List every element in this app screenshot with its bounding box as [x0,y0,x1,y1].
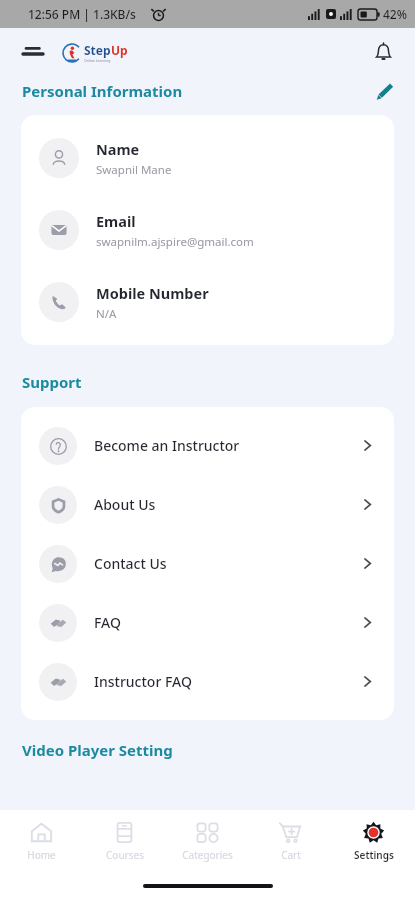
button[interactable]: Settings [332,810,415,872]
button[interactable]: About Us [21,475,394,534]
staticText: FAQ [94,613,361,632]
staticText: Instructor FAQ [94,672,361,691]
button[interactable]: Notifications [365,34,401,70]
staticText: About Us [94,495,361,514]
staticText: swapnilm.ajspire@gmail.com [96,234,254,250]
button[interactable]: Categories [166,810,249,872]
button[interactable]: Cart [249,810,332,872]
staticText: Video Player Setting [22,740,173,760]
staticText: Email [96,211,136,231]
button[interactable]: Mobile Number [21,266,394,338]
staticText: Mobile Number [96,283,209,303]
staticText: Name [96,139,140,159]
button[interactable]: Contact Us [21,534,394,593]
button[interactable]: Instructor FAQ [21,652,394,711]
staticText: Up [111,42,128,58]
staticText: Home [27,848,56,862]
staticText: Contact Us [94,554,361,573]
staticText: Swapnil Mane [96,162,172,178]
staticText: 42% [383,6,407,22]
button[interactable]: Courses [83,810,166,872]
button[interactable]: Name [21,122,394,194]
button[interactable]: Home [0,810,83,872]
staticText: Online Learning [84,58,111,63]
staticText: Courses [106,848,144,862]
staticText: 12:56 PM | 1.3KB/s [28,6,136,22]
staticText: Cart [281,848,301,862]
button[interactable]: FAQ [21,593,394,652]
staticText: Become an Instructor [94,436,361,455]
staticText: Settings [354,848,394,862]
button[interactable]: Menu [16,35,50,69]
staticText: Categories [182,848,233,862]
staticText: Support [22,372,82,392]
staticText: N/A [96,306,117,322]
button[interactable]: Become an Instructor [21,416,394,475]
button[interactable]: Email [21,194,394,266]
staticText: Step [84,42,111,58]
button[interactable]: Edit personal information [369,76,401,106]
staticText: Personal Information [22,81,183,101]
